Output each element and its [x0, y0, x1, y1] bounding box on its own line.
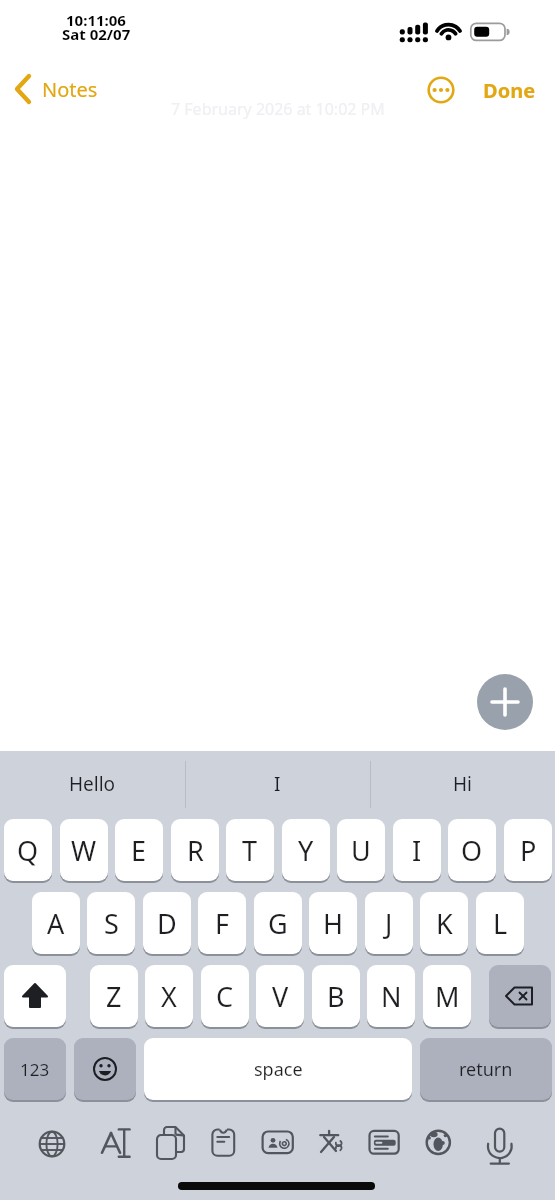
button[interactable]	[202, 1122, 246, 1166]
button[interactable]	[310, 1122, 354, 1166]
button[interactable]	[4, 965, 66, 1027]
staticText: 123	[20, 1058, 50, 1081]
button[interactable]	[148, 1122, 192, 1166]
button[interactable]: L	[476, 892, 524, 954]
button[interactable]: Hi	[370, 769, 555, 799]
staticText: W	[71, 832, 97, 869]
staticText: Y	[298, 832, 314, 869]
button[interactable]: Z	[90, 965, 138, 1027]
button[interactable]: Done	[474, 74, 544, 106]
staticText: U	[351, 832, 371, 869]
button[interactable]: N	[367, 965, 415, 1027]
staticText: Z	[106, 978, 122, 1015]
staticText: M	[435, 978, 460, 1015]
button[interactable]: E	[115, 819, 163, 881]
button[interactable]: return	[420, 1038, 552, 1100]
button[interactable]	[363, 1122, 407, 1166]
button[interactable]: I	[185, 769, 370, 799]
staticText: I	[274, 771, 281, 797]
staticText: A	[47, 905, 65, 942]
button[interactable]: B	[312, 965, 360, 1027]
button[interactable]	[475, 1122, 519, 1166]
staticText: N	[381, 978, 402, 1015]
staticText: 10:11:06	[66, 10, 126, 30]
button[interactable]	[416, 1122, 460, 1166]
button[interactable]: S	[87, 892, 135, 954]
button[interactable]	[426, 75, 456, 105]
button[interactable]: Hello	[0, 769, 185, 799]
staticText: C	[216, 978, 234, 1015]
staticText: R	[187, 832, 204, 869]
staticText: K	[436, 905, 453, 942]
button[interactable]: M	[423, 965, 471, 1027]
staticText: I	[412, 832, 422, 869]
button[interactable]: Y	[282, 819, 330, 881]
button[interactable]: O	[448, 819, 496, 881]
staticText: D	[157, 905, 177, 942]
button[interactable]: T	[226, 819, 274, 881]
staticText: B	[327, 978, 345, 1015]
button[interactable]: Notes	[12, 72, 98, 106]
staticText: Notes	[42, 76, 98, 103]
staticText: P	[520, 832, 537, 869]
button[interactable]	[256, 1122, 300, 1166]
button[interactable]: C	[201, 965, 249, 1027]
staticText: Hi	[453, 771, 472, 797]
staticText: S	[104, 905, 119, 942]
staticText: H	[323, 905, 344, 942]
button[interactable]: G	[254, 892, 302, 954]
button[interactable]: I	[393, 819, 441, 881]
button[interactable]: Q	[4, 819, 52, 881]
button[interactable]: space	[144, 1038, 412, 1100]
button[interactable]: K	[420, 892, 468, 954]
button[interactable]: A	[32, 892, 80, 954]
staticText: J	[385, 905, 393, 942]
staticText: 7 February 2026 at 10:02 PM	[171, 98, 385, 120]
button[interactable]	[30, 1122, 74, 1166]
staticText: G	[268, 905, 288, 942]
staticText: O	[461, 832, 483, 869]
staticText: Q	[17, 832, 39, 869]
staticText: F	[215, 905, 230, 942]
staticText: L	[493, 905, 508, 942]
button[interactable]: V	[256, 965, 304, 1027]
staticText: Hello	[69, 771, 116, 797]
button[interactable]: R	[171, 819, 219, 881]
staticText: Done	[483, 77, 536, 104]
staticText: X	[161, 978, 177, 1015]
staticText: Sat 02/07	[62, 24, 131, 44]
button[interactable]: 123	[4, 1038, 66, 1100]
button[interactable]	[91, 1122, 135, 1166]
button[interactable]: U	[337, 819, 385, 881]
button[interactable]: W	[60, 819, 108, 881]
button[interactable]: P	[504, 819, 552, 881]
staticText: E	[131, 832, 147, 869]
button[interactable]: X	[145, 965, 193, 1027]
button[interactable]	[489, 965, 551, 1027]
button[interactable]: F	[198, 892, 246, 954]
staticText: return	[459, 1057, 513, 1082]
button[interactable]: J	[365, 892, 413, 954]
staticText: space	[254, 1057, 303, 1082]
button[interactable]	[477, 674, 533, 730]
staticText: T	[242, 832, 258, 869]
button[interactable]: H	[309, 892, 357, 954]
button[interactable]: D	[143, 892, 191, 954]
button[interactable]	[74, 1038, 136, 1100]
staticText: V	[272, 978, 289, 1015]
